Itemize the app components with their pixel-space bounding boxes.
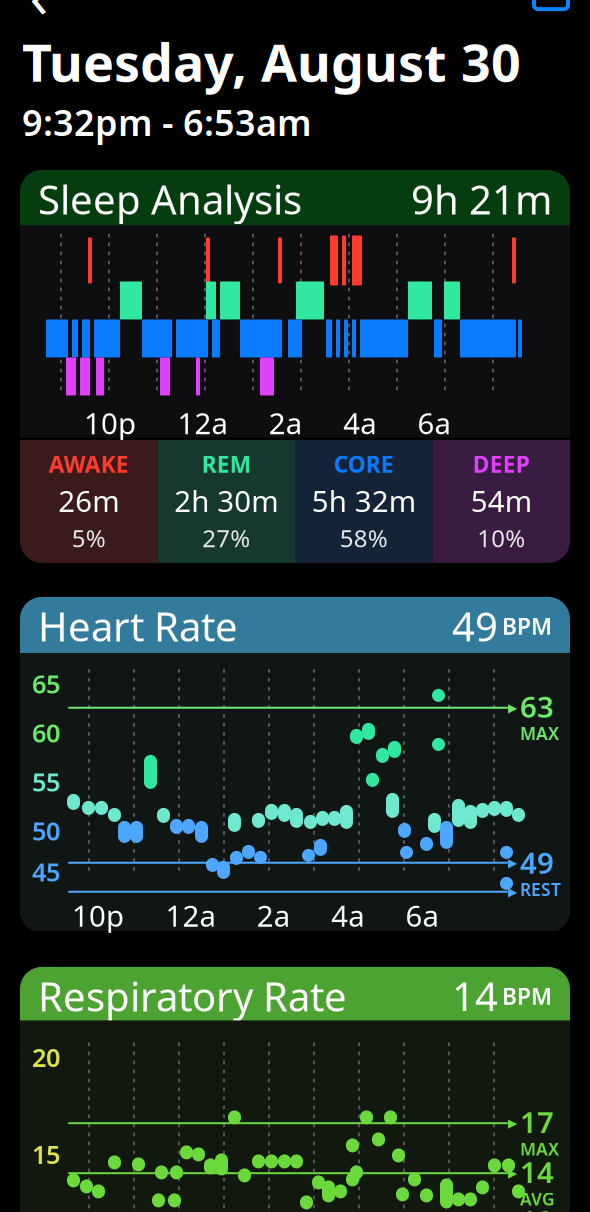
button[interactable]: Sleep Analysis xyxy=(0,170,590,563)
staticText: 10p xyxy=(84,403,136,442)
staticText: Heart Rate xyxy=(38,599,238,652)
staticText: 58% xyxy=(340,522,388,554)
staticText: Respiratory Rate xyxy=(38,969,347,1022)
staticText: 20 xyxy=(32,1040,60,1074)
staticText: 12a xyxy=(177,403,227,442)
staticText: Tuesday, August 30 xyxy=(22,27,521,96)
staticText: 49 xyxy=(520,843,554,882)
staticText: 54m xyxy=(471,481,532,520)
staticText: Sleep Analysis xyxy=(38,172,302,225)
staticText: 2h 30m xyxy=(174,481,278,520)
staticText: 60 xyxy=(32,716,60,749)
staticText: 6a xyxy=(418,403,451,442)
staticText: 63 xyxy=(520,687,554,726)
staticText: 17 xyxy=(520,1102,554,1141)
staticText: ▶ xyxy=(508,885,517,898)
staticText: 5h 32m xyxy=(312,481,416,520)
staticText: 5% xyxy=(72,522,106,554)
button[interactable]: Back xyxy=(12,0,66,21)
staticText: DEEP xyxy=(473,449,530,479)
staticText: AWAKE xyxy=(49,449,129,479)
staticText: BPM xyxy=(502,981,552,1011)
staticText: 14 xyxy=(452,969,498,1022)
staticText: 26m xyxy=(58,481,119,520)
staticText: 55 xyxy=(32,765,60,798)
staticText: 50 xyxy=(32,814,60,847)
staticText: 6a xyxy=(406,896,439,935)
staticText: ▶ xyxy=(508,856,517,869)
staticText: 10p xyxy=(72,896,124,935)
staticText: 12 xyxy=(520,1201,554,1212)
staticText: 10% xyxy=(477,522,525,554)
staticText: 27% xyxy=(202,522,250,554)
staticText: 12a xyxy=(165,896,215,935)
staticText: 9h 21m xyxy=(411,172,552,225)
button[interactable]: Respiratory Rate xyxy=(0,967,590,1212)
button[interactable]: Heart Rate xyxy=(0,597,590,933)
staticText: 9:32pm - 6:53am xyxy=(22,98,312,146)
staticText: CORE xyxy=(334,449,394,479)
staticText: REM xyxy=(202,449,251,479)
staticText: 65 xyxy=(32,667,60,700)
button[interactable]: Show on Apple Watch xyxy=(524,0,578,21)
staticText: ‹ xyxy=(29,0,48,35)
staticText: ▶ xyxy=(508,701,517,714)
staticText: 45 xyxy=(32,855,60,888)
staticText: AVG xyxy=(520,1187,555,1210)
staticText: MAX xyxy=(520,1137,559,1160)
staticText: 2a xyxy=(257,896,290,935)
staticText: ▶ xyxy=(508,1116,517,1130)
staticText: 15 xyxy=(32,1137,60,1171)
staticText: 4a xyxy=(331,896,364,935)
staticText: 4a xyxy=(343,403,376,442)
staticText: 14 xyxy=(520,1152,554,1191)
staticText: 49 xyxy=(452,599,498,652)
staticText: 2a xyxy=(269,403,302,442)
staticText: ▶ xyxy=(508,1166,517,1180)
staticText: MAX xyxy=(520,722,559,745)
staticText: BPM xyxy=(502,611,552,641)
staticText: REST xyxy=(520,878,561,901)
